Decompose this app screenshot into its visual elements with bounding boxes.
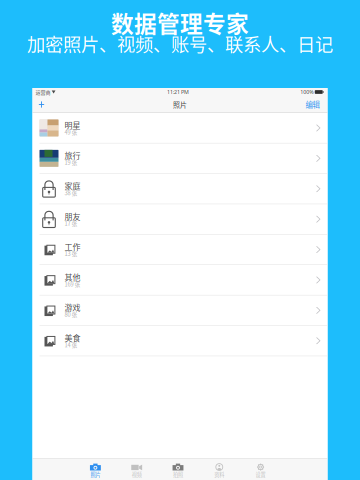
staticText: 运营商 [35, 88, 50, 96]
staticText: 明星 [64, 119, 80, 131]
staticText: 拍照 [173, 471, 183, 478]
staticText: 100% [300, 88, 313, 96]
staticText: 13 张 [64, 249, 77, 258]
button[interactable]: 新建相册 [35, 97, 48, 112]
staticText: 旅行 [64, 150, 80, 161]
staticText: 数据管理专家 [111, 6, 249, 39]
button[interactable]: 视频 [116, 458, 157, 480]
staticText: 80 张 [64, 310, 77, 318]
staticText: 美食 [64, 332, 80, 344]
staticText: 照片 [173, 99, 187, 109]
staticText: 照片 [90, 471, 100, 478]
staticText: 加密照片、视频、账号、联系人、日记 [27, 30, 333, 57]
staticText: 19 张 [64, 158, 77, 166]
button[interactable]: 资料 [199, 458, 240, 480]
staticText: 17 张 [64, 219, 77, 227]
staticText: 49 张 [64, 128, 77, 136]
staticText: 设置 [256, 471, 266, 478]
staticText: 38 张 [64, 189, 77, 197]
button[interactable]: 游戏 [32, 295, 327, 326]
staticText: 家庭 [64, 180, 80, 192]
staticText: 资料 [214, 471, 224, 478]
staticText: 视频 [132, 471, 142, 478]
button[interactable]: 拍照 [157, 458, 199, 480]
button[interactable]: 美食 [32, 326, 327, 356]
button[interactable]: 设置 [240, 458, 281, 480]
staticText: 169 张 [64, 280, 80, 288]
button[interactable]: 明星 [32, 113, 327, 143]
button[interactable]: 编辑 [305, 97, 319, 112]
staticText: 其他 [64, 271, 80, 283]
staticText: 编辑 [305, 99, 319, 110]
button[interactable]: 朋友 [32, 204, 327, 235]
button[interactable]: 其他 [32, 265, 327, 295]
button[interactable]: 照片 [75, 458, 116, 480]
staticText: 11:21 PM [167, 88, 189, 96]
button[interactable]: 家庭 [32, 174, 327, 204]
staticText: 游戏 [64, 302, 80, 313]
button[interactable]: 旅行 [32, 143, 327, 174]
staticText: 工作 [64, 241, 80, 252]
button[interactable]: 工作 [32, 235, 327, 265]
staticText: 14 张 [64, 341, 77, 349]
staticText: 朋友 [64, 210, 80, 222]
